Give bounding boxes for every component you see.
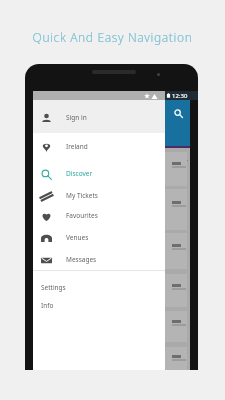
button[interactable]: Ireland [33,136,165,158]
staticText: Venues [66,233,89,242]
button[interactable]: My Tickets [33,185,165,207]
staticText: Ireland [66,142,88,151]
button[interactable]: Sign in [33,107,165,129]
button[interactable] [36,311,187,342]
staticText: Discover [66,169,93,178]
staticText: Sign in [66,113,87,122]
staticText: Info [41,301,54,310]
staticText: Favourites [66,211,98,220]
staticText: 12:30 [172,92,188,100]
button[interactable]: Messages [33,249,165,271]
staticText: Messages [66,255,97,264]
button[interactable] [36,233,187,269]
button[interactable] [36,274,187,307]
button[interactable]: Venues [33,227,165,249]
button[interactable] [36,347,187,370]
button[interactable]: Discover [33,163,165,185]
staticText: My Tickets [66,191,98,200]
button[interactable]: Settings [33,280,165,296]
staticText: Settings [41,283,66,292]
button[interactable]: Search [174,109,183,118]
button[interactable] [36,189,187,230]
button[interactable]: Favourites [33,205,165,227]
button[interactable] [36,152,187,186]
staticText: Discover [168,158,189,165]
button[interactable]: Info [33,298,165,314]
staticText: Quick And Easy Navigation [0,29,225,45]
